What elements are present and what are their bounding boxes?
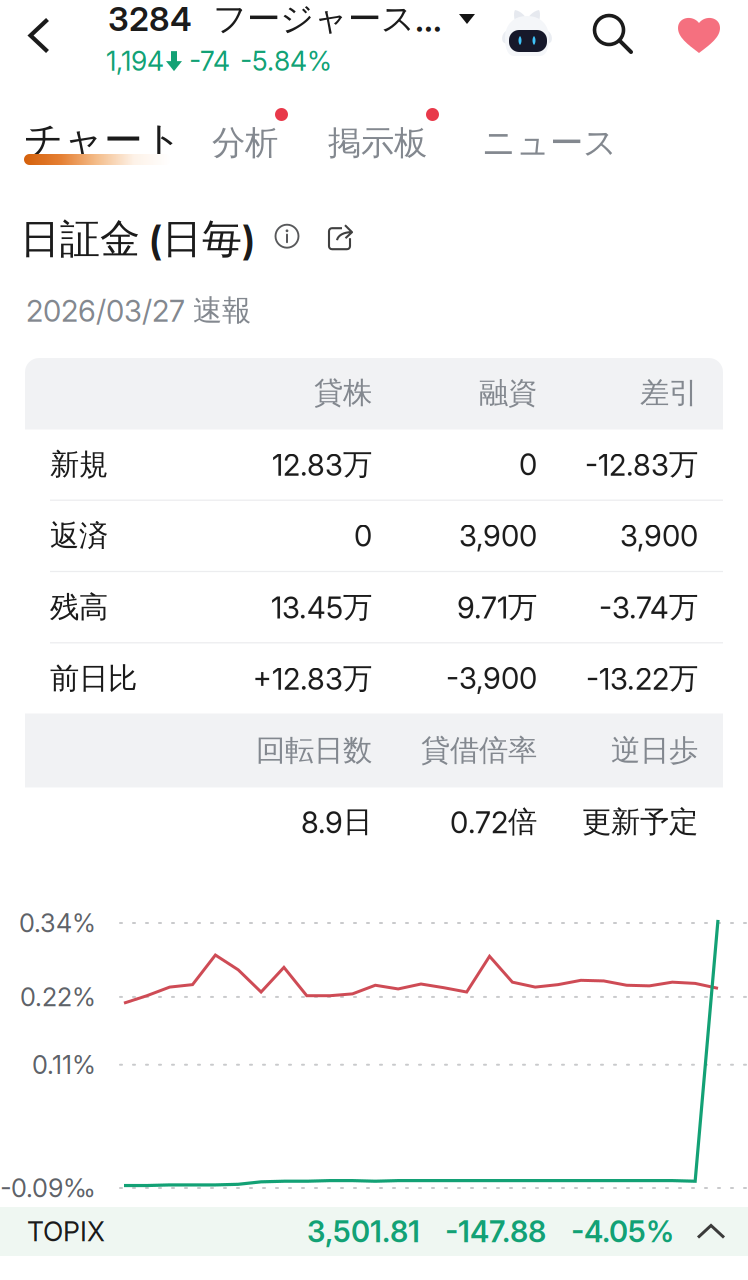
button[interactable]: Share (327, 223, 353, 255)
button[interactable]: AI assistant (500, 8, 556, 60)
button[interactable]: Information (274, 226, 300, 252)
button[interactable]: TOPIX (0, 1207, 748, 1256)
staticText: -12.83万 (585, 446, 698, 483)
staticText: 2026/03/27 速報 (26, 292, 251, 329)
button[interactable]: ニュース (473, 92, 623, 180)
button[interactable]: Search (592, 13, 636, 57)
staticText: 残高 (50, 589, 108, 626)
staticText: -0.09‰ (0, 1173, 96, 1203)
button[interactable]: Back (0, 0, 78, 72)
staticText: 前日比 (50, 660, 137, 697)
button[interactable]: Favorite (676, 13, 722, 55)
staticText: 差引 (640, 375, 698, 412)
button[interactable]: 分析 (202, 92, 298, 180)
staticText: 逆日歩 (611, 732, 698, 769)
staticText: +12.83万 (253, 660, 372, 697)
staticText: 3,900 (459, 518, 537, 554)
staticText: 0 (519, 447, 537, 482)
staticText: -3.74万 (599, 589, 698, 626)
staticText: 貸借倍率 (421, 732, 537, 769)
staticText: 0.11% (32, 1049, 96, 1080)
staticText: 3284 (108, 0, 192, 39)
staticText: -5.84% (240, 45, 332, 77)
staticText: 掲示板 (328, 122, 427, 164)
staticText: -74 (189, 45, 230, 77)
staticText: TOPIX (27, 1215, 105, 1248)
staticText: 回転日数 (256, 732, 372, 769)
staticText: 0.34% (19, 908, 96, 938)
staticText: 1,194 (106, 45, 164, 77)
staticText: -3,900 (446, 661, 537, 696)
staticText: 0.22% (20, 982, 96, 1012)
staticText: 融資 (479, 375, 537, 412)
staticText: フージャース… (213, 0, 442, 40)
staticText: 3,900 (620, 518, 698, 554)
staticText: 13.45万 (271, 589, 372, 626)
staticText: 日証金 (日毎) (20, 214, 255, 264)
staticText: 9.71万 (457, 589, 537, 626)
staticText: 分析 (212, 122, 278, 164)
staticText: -13.22万 (586, 660, 698, 697)
button[interactable]: チャート (0, 92, 170, 180)
button[interactable]: 掲示板 (318, 92, 448, 180)
staticText: -4.05% (571, 1214, 674, 1249)
staticText: 12.83万 (272, 446, 372, 483)
staticText: 返済 (50, 517, 108, 554)
staticText: 貸株 (314, 375, 372, 412)
staticText: 新規 (50, 446, 108, 483)
staticText: 8.9日 (301, 803, 372, 840)
staticText: 更新予定 (582, 803, 698, 840)
staticText: 3,501.81 (307, 1214, 420, 1249)
staticText: ニュース (482, 122, 617, 164)
staticText: チャート (24, 116, 183, 165)
staticText: 0.72倍 (450, 803, 537, 840)
staticText: -147.88 (445, 1214, 546, 1249)
staticText: 0 (354, 518, 372, 554)
